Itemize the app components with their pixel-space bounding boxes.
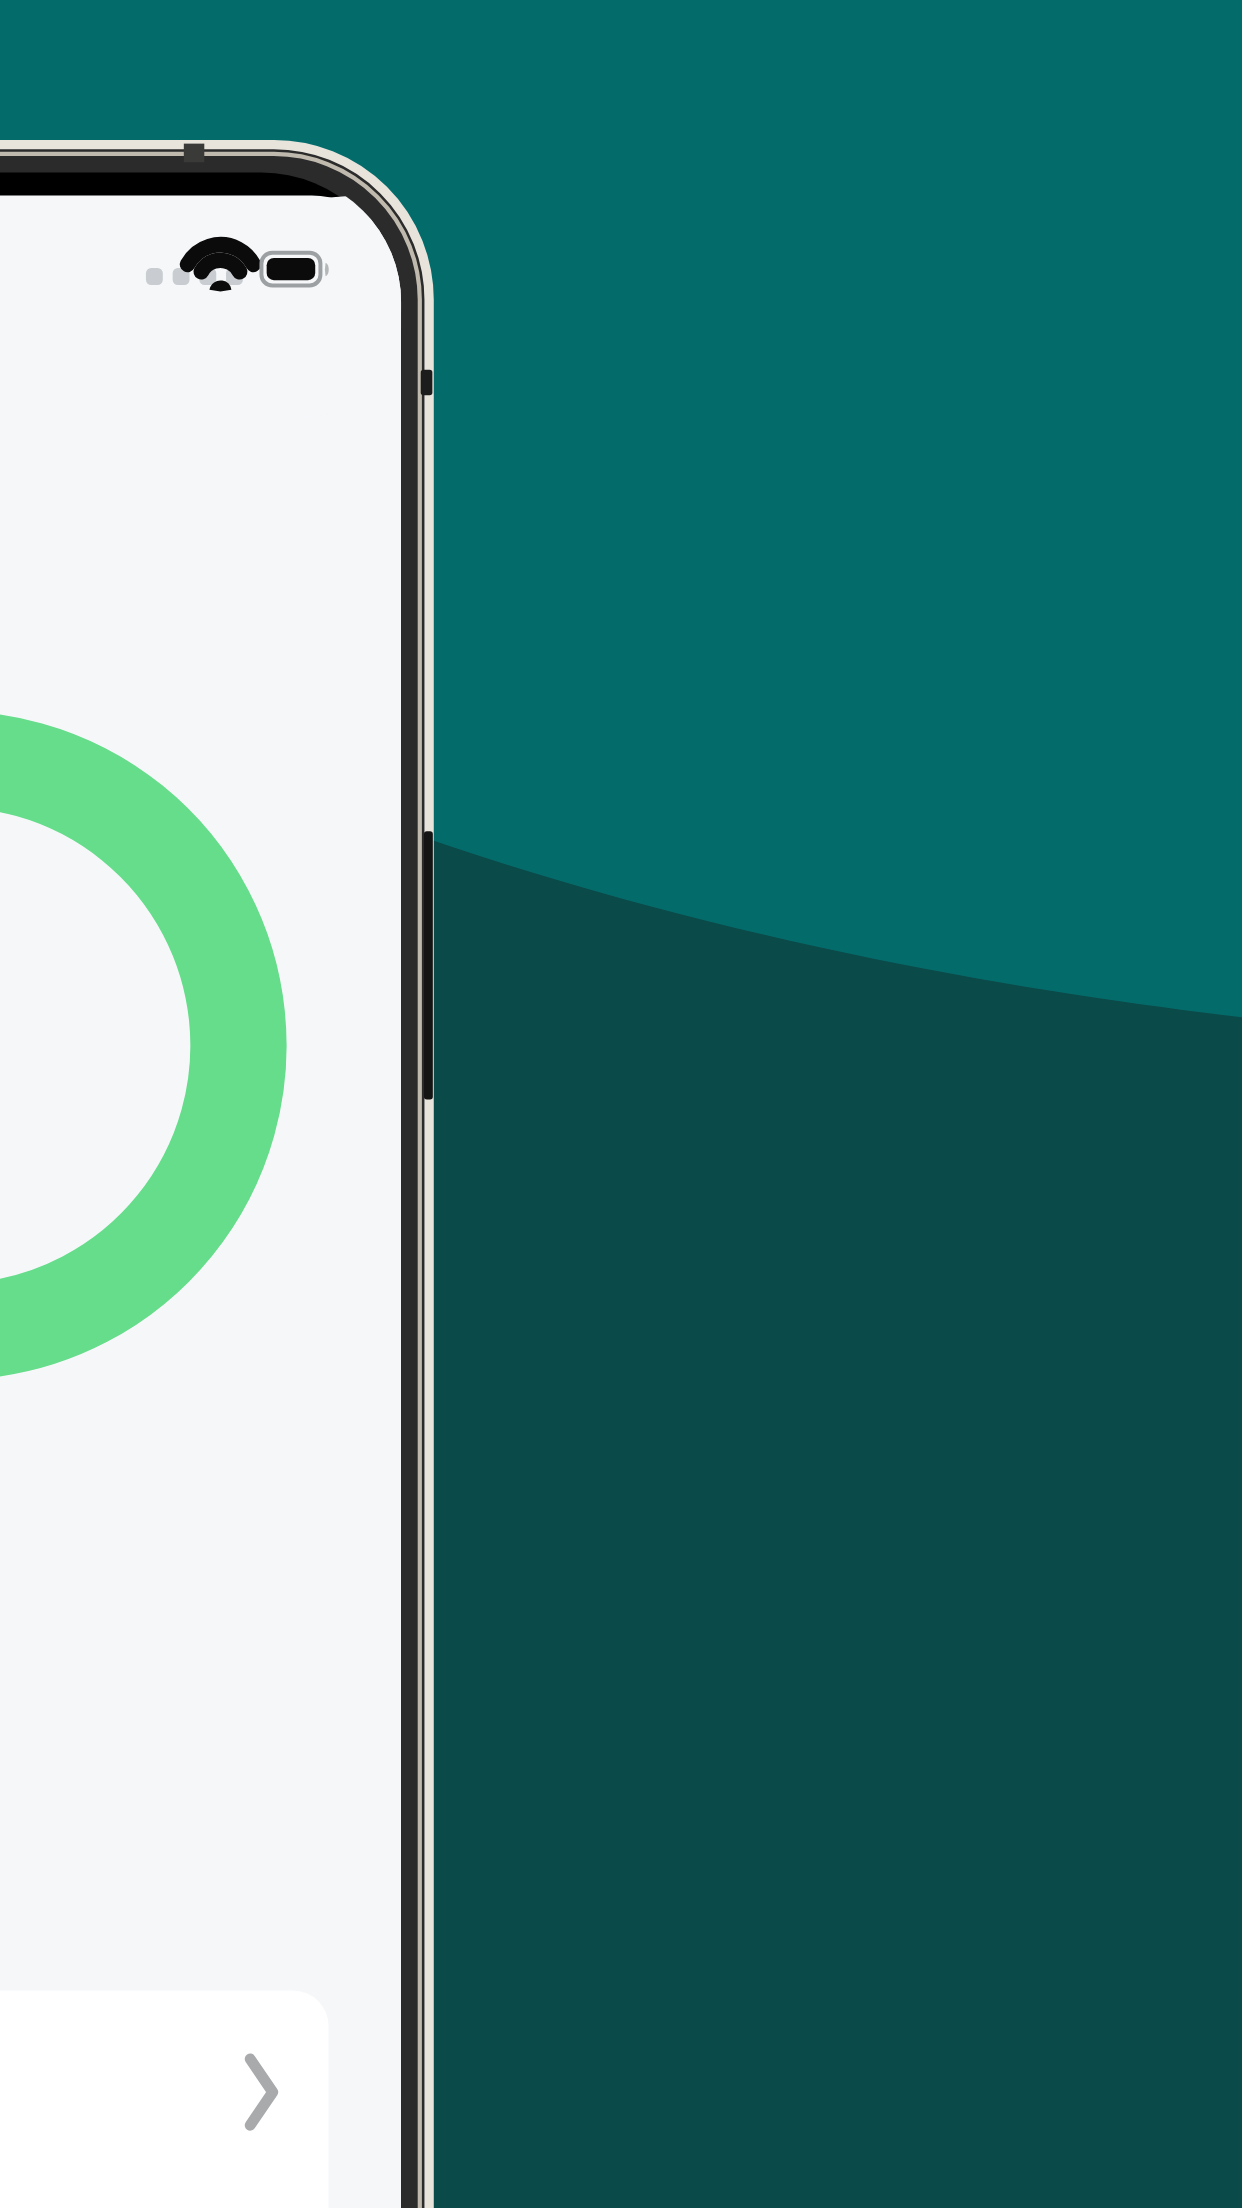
button[interactable]: Open details [0,1990,330,2208]
button[interactable]: Progress ring [0,540,260,1340]
